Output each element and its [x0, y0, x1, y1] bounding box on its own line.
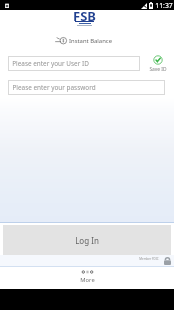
staticText: Instant Balance: [69, 37, 112, 45]
staticText: Please enter your User ID: [12, 59, 89, 68]
staticText: Member FDIC: [139, 257, 159, 261]
button[interactable]: Please enter your password: [8, 80, 165, 95]
button[interactable]: Instant Balance: [0, 34, 170, 47]
staticText: 11:37: [155, 1, 173, 10]
other: More: [82, 270, 93, 274]
button[interactable]: Log In: [3, 225, 171, 255]
other: FSB Farmers State Bank: [73, 7, 96, 26]
staticText: Save ID: [149, 66, 167, 73]
button[interactable]: Please enter your User ID: [8, 56, 140, 71]
button[interactable]: Save ID: [145, 55, 170, 73]
button[interactable]: More: [0, 267, 174, 289]
staticText: More: [80, 276, 95, 284]
staticText: Log In: [75, 235, 99, 246]
staticText: Please enter your password: [12, 83, 96, 92]
other: Instant Balance: [54, 36, 66, 45]
other: Secure: [164, 257, 171, 265]
staticText: FSB: [73, 7, 96, 21]
